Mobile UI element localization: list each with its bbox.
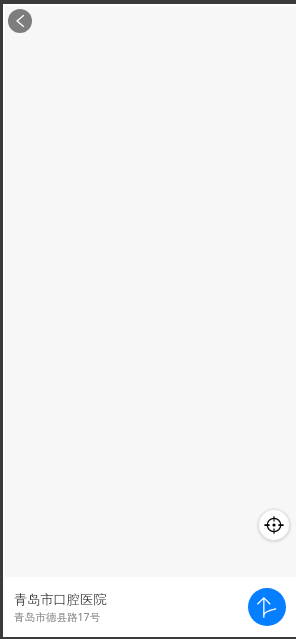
button[interactable]: Back [8,9,32,33]
staticText: 青岛市德县路17号 [14,610,101,624]
button[interactable]: Start navigation [248,588,286,626]
button[interactable]: My location [259,510,289,540]
staticText: 青岛市口腔医院 [14,591,107,608]
